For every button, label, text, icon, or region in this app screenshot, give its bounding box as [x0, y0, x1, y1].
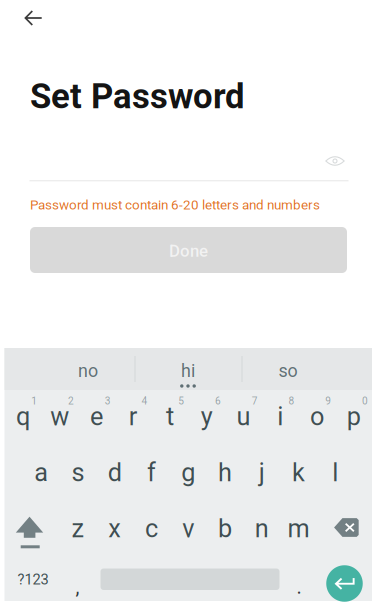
staticText: s	[71, 458, 84, 487]
button[interactable]: o	[298, 390, 335, 446]
button[interactable]: q	[4, 390, 41, 446]
staticText: h	[218, 458, 232, 487]
button[interactable]: h	[207, 446, 243, 502]
staticText: p	[347, 402, 361, 431]
button[interactable]: Comma	[58, 558, 96, 601]
staticText: ,	[75, 575, 79, 599]
button[interactable]: Backspace	[317, 502, 372, 558]
button[interactable]: r	[115, 390, 152, 446]
button[interactable]: d	[96, 446, 133, 502]
button[interactable]: Back	[9, 0, 57, 39]
button[interactable]: Show password	[313, 143, 357, 179]
button[interactable]: Enter	[317, 558, 372, 601]
staticText: 3	[105, 395, 111, 407]
staticText: b	[218, 514, 232, 543]
button[interactable]: c	[133, 502, 170, 558]
staticText: hi	[181, 360, 195, 381]
staticText: u	[236, 402, 250, 431]
staticText: k	[292, 458, 305, 487]
staticText: w	[50, 402, 69, 431]
button[interactable]: l	[317, 446, 354, 502]
staticText: t	[166, 402, 174, 431]
staticText: no	[78, 360, 98, 381]
button[interactable]: s	[60, 446, 96, 502]
staticText: so	[278, 360, 297, 381]
staticText: 2	[68, 395, 74, 407]
button[interactable]: so	[240, 348, 336, 390]
staticText: Password must contain 6-20 letters and n…	[30, 197, 320, 213]
staticText: 9	[325, 395, 331, 407]
staticText: o	[310, 402, 324, 431]
staticText: 7	[252, 395, 258, 407]
button[interactable]: Period	[281, 558, 315, 601]
button[interactable]: g	[170, 446, 207, 502]
button[interactable]: z	[60, 502, 96, 558]
staticText: z	[71, 514, 84, 543]
button[interactable]: t	[151, 390, 188, 446]
button[interactable]: ?123	[4, 558, 61, 601]
button[interactable]: b	[207, 502, 243, 558]
button[interactable]: Space	[93, 558, 287, 601]
staticText: x	[108, 514, 121, 543]
button[interactable]: w	[41, 390, 78, 446]
button[interactable]: Shift	[4, 502, 60, 558]
button[interactable]: e	[78, 390, 115, 446]
staticText: f	[147, 458, 156, 487]
staticText: i	[277, 402, 283, 431]
staticText: n	[255, 514, 269, 543]
button[interactable]: x	[96, 502, 133, 558]
staticText: d	[108, 458, 122, 487]
staticText: c	[145, 514, 158, 543]
staticText: y	[201, 402, 213, 431]
staticText: 6	[215, 395, 221, 407]
button[interactable]: m	[280, 502, 317, 558]
button[interactable]: k	[280, 446, 317, 502]
button[interactable]: p	[335, 390, 372, 446]
staticText: 1	[31, 395, 37, 407]
button[interactable]: a	[23, 446, 60, 502]
staticText: .	[296, 575, 301, 599]
staticText: 5	[178, 395, 184, 407]
staticText: a	[34, 458, 48, 487]
staticText: Set Password	[30, 76, 245, 117]
button[interactable]: hi	[140, 348, 236, 390]
staticText: q	[16, 402, 30, 431]
staticText: m	[287, 514, 309, 543]
button[interactable]: v	[170, 502, 207, 558]
staticText: g	[181, 458, 195, 487]
staticText: v	[182, 514, 194, 543]
button[interactable]: f	[133, 446, 170, 502]
button[interactable]: n	[243, 502, 280, 558]
staticText: 4	[141, 395, 147, 407]
staticText: j	[259, 458, 265, 487]
staticText: ?123	[17, 571, 48, 588]
staticText: 0	[362, 395, 368, 407]
button[interactable]: u	[225, 390, 262, 446]
staticText: l	[332, 458, 338, 487]
button[interactable]: i	[262, 390, 299, 446]
button[interactable]: y	[188, 390, 225, 446]
staticText: e	[90, 402, 103, 431]
staticText: Done	[169, 241, 208, 261]
staticText: r	[129, 402, 138, 431]
button[interactable]: no	[40, 348, 136, 390]
button[interactable]: j	[243, 446, 280, 502]
staticText: 8	[288, 395, 294, 407]
